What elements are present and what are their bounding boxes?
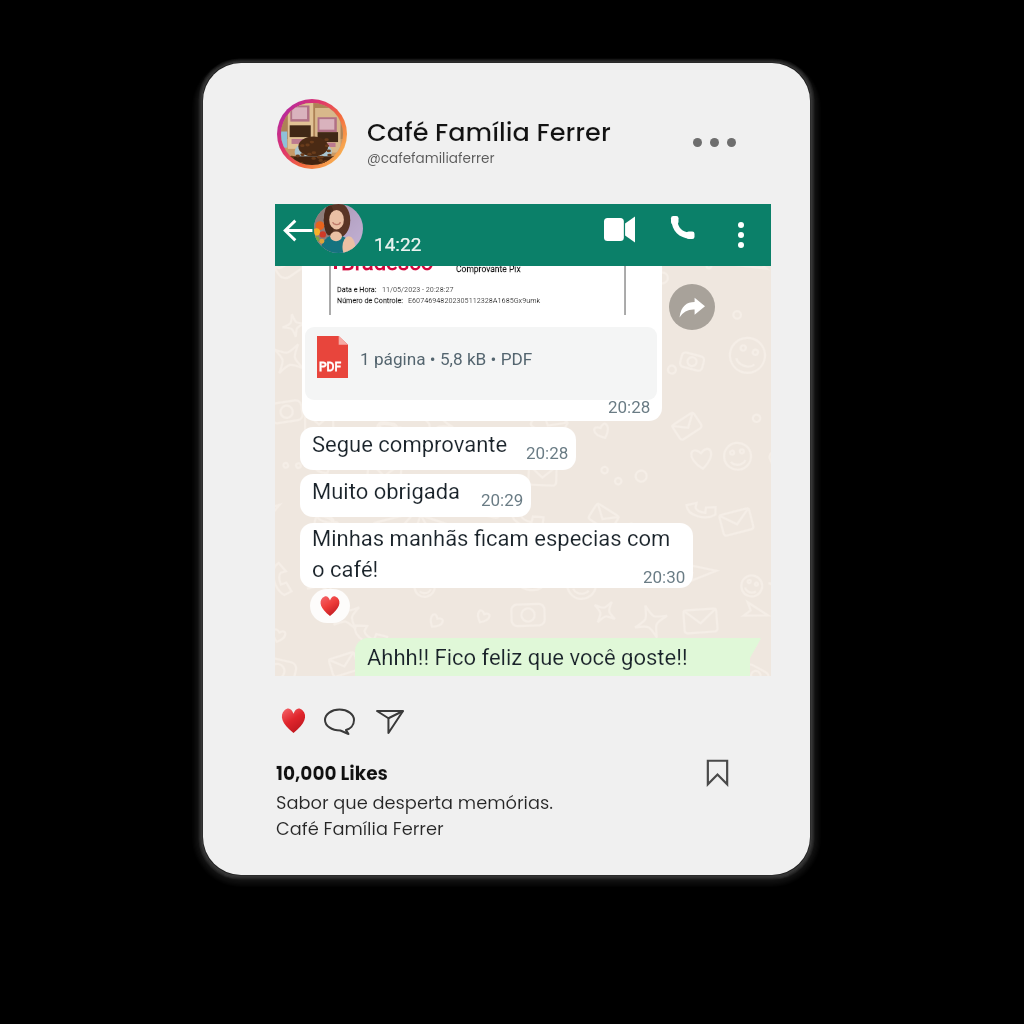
staticText: 14:22: [374, 233, 422, 255]
staticText: 20:28: [526, 443, 569, 463]
staticText: 20:29: [481, 490, 524, 510]
staticText: PDF: [319, 360, 342, 374]
button[interactable]: Bradesco: [275, 204, 771, 676]
staticText: Bradesco: [341, 250, 434, 276]
staticText: Café Família Ferrer: [276, 816, 444, 841]
staticText: Sabor que desperta memórias.: [276, 790, 553, 815]
staticText: E60746948202305112328A1685Gx9umk: [408, 296, 541, 304]
button[interactable]: Café Família Ferrer profile picture: [277, 99, 347, 169]
button[interactable]: Share: [372, 704, 408, 740]
staticText: 20:30: [643, 567, 686, 587]
staticText: @cafefamiliaferrer: [367, 149, 495, 168]
staticText: Muito obrigada: [312, 479, 461, 505]
staticText: Comprovante Pix: [456, 264, 521, 274]
button[interactable]: Voice call: [662, 207, 702, 247]
staticText: Minhas manhãs ficam especias com o café!: [312, 526, 671, 582]
staticText: 11/05/2023 - 20:28:27: [382, 285, 454, 293]
button[interactable]: [310, 589, 350, 623]
button[interactable]: Like: [275, 702, 311, 738]
button[interactable]: Forward message: [669, 284, 715, 330]
staticText: Número de Controle:: [337, 296, 403, 304]
staticText: 10,000 Likes: [276, 761, 388, 787]
staticText: Segue comprovante: [312, 432, 508, 458]
button[interactable]: Save: [697, 752, 737, 792]
button[interactable]: More options: [674, 122, 754, 162]
staticText: Café Família Ferrer: [367, 114, 611, 150]
button[interactable]: Back: [279, 211, 317, 249]
staticText: 1 página • 5,8 kB • PDF: [360, 349, 533, 369]
staticText: Ahhh!! Fico feliz que você goste!!: [367, 645, 688, 671]
staticText: Data e Hora:: [337, 285, 377, 293]
button[interactable]: Comment: [321, 703, 357, 739]
button[interactable]: Chat menu: [724, 215, 758, 255]
button[interactable]: Video call: [597, 207, 641, 251]
staticText: 20:28: [608, 397, 651, 417]
